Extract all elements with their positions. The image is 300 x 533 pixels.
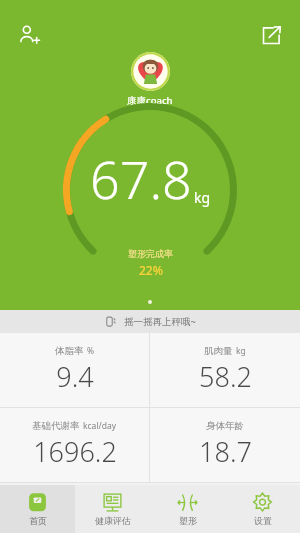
staticText: 塑形 — [179, 515, 197, 526]
staticText: 基础代谢率 — [32, 420, 80, 432]
staticText: 康康coach — [127, 94, 173, 107]
staticText: 塑形完成率 — [128, 248, 173, 259]
staticText: 67.8 — [90, 143, 192, 214]
button[interactable]: Share — [254, 18, 288, 52]
staticText: 肌肉量 — [204, 345, 233, 357]
staticText: % — [87, 345, 95, 357]
staticText: kcal/day — [83, 420, 117, 432]
staticText: 健康评估 — [95, 515, 131, 526]
button[interactable]: 健康评估 — [75, 485, 150, 533]
staticText: 18.7 — [199, 433, 252, 470]
staticText: 摇一摇再上秤哦~ — [124, 315, 196, 328]
staticText: 9.4 — [56, 358, 94, 395]
button[interactable]: Add friend — [12, 18, 46, 52]
staticText: 首页 — [29, 515, 47, 526]
button[interactable]: 基础代谢率 — [0, 408, 149, 482]
button[interactable]: 设置 — [225, 485, 300, 533]
staticText: 身体年龄 — [206, 420, 244, 432]
button[interactable]: 首页 — [0, 485, 75, 533]
button[interactable]: 肌肉量 — [150, 333, 300, 407]
staticText: 1696.2 — [33, 433, 117, 470]
staticText: 58.2 — [199, 358, 252, 395]
button[interactable]: 摇一摇再上秤哦~ — [0, 310, 300, 333]
staticText: 22% — [139, 262, 163, 278]
staticText: 设置 — [254, 515, 272, 526]
staticText: kg — [194, 188, 211, 207]
button[interactable]: 身体年龄 — [150, 408, 300, 482]
staticText: 体脂率 — [55, 345, 84, 357]
button[interactable]: 塑形 — [150, 485, 225, 533]
button[interactable]: 体脂率 — [0, 333, 149, 407]
button[interactable]: Coach avatar — [131, 52, 170, 91]
staticText: kg — [236, 345, 246, 357]
